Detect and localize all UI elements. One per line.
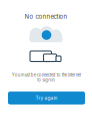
staticText: You must be connected to the internet to… <box>11 72 80 83</box>
button[interactable]: Try again <box>8 91 85 104</box>
staticText: Try again <box>35 95 57 101</box>
staticText: No connection <box>24 13 67 20</box>
